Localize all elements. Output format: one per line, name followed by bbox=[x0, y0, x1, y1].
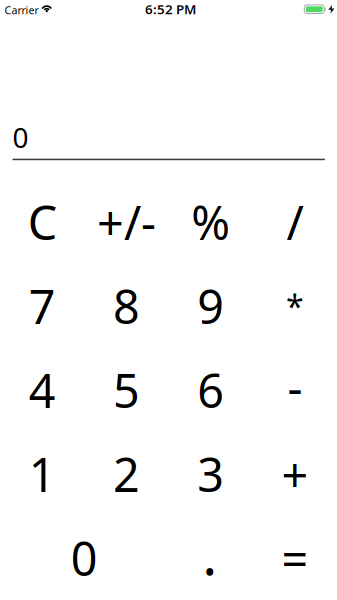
staticText: - bbox=[287, 356, 302, 418]
button[interactable]: + bbox=[253, 432, 337, 516]
staticText: 3 bbox=[197, 443, 224, 505]
staticText: Carrier bbox=[4, 3, 38, 17]
button[interactable]: 1 bbox=[0, 432, 84, 516]
button[interactable]: = bbox=[253, 516, 337, 600]
button[interactable]: 6 bbox=[168, 348, 253, 432]
staticText: + bbox=[281, 443, 308, 505]
staticText: 7 bbox=[29, 275, 56, 337]
button[interactable]: 7 bbox=[0, 264, 84, 348]
staticText: * bbox=[286, 285, 304, 327]
button[interactable]: 0 bbox=[0, 516, 168, 600]
button[interactable]: * bbox=[253, 264, 337, 348]
button[interactable]: % bbox=[168, 180, 253, 264]
button[interactable]: . bbox=[168, 516, 253, 600]
staticText: 2 bbox=[113, 443, 140, 505]
staticText: 0 bbox=[71, 527, 98, 589]
staticText: 4 bbox=[29, 359, 56, 421]
staticText: = bbox=[281, 527, 308, 589]
staticText: 0 bbox=[12, 118, 28, 156]
staticText: 5 bbox=[113, 359, 140, 421]
staticText: . bbox=[202, 516, 217, 591]
button[interactable]: / bbox=[253, 180, 337, 264]
button[interactable]: - bbox=[253, 348, 337, 432]
button[interactable]: 3 bbox=[168, 432, 253, 516]
button[interactable]: +/- bbox=[84, 180, 168, 264]
button[interactable]: 8 bbox=[84, 264, 168, 348]
staticText: 9 bbox=[197, 275, 224, 337]
staticText: 8 bbox=[113, 275, 140, 337]
button[interactable]: C bbox=[0, 180, 84, 264]
staticText: 1 bbox=[29, 443, 56, 505]
staticText: 6:52 PM bbox=[145, 0, 196, 18]
button[interactable]: 4 bbox=[0, 348, 84, 432]
button[interactable]: 2 bbox=[84, 432, 168, 516]
staticText: 6 bbox=[197, 359, 224, 421]
staticText: C bbox=[28, 191, 57, 253]
button[interactable]: 5 bbox=[84, 348, 168, 432]
button[interactable]: 9 bbox=[168, 264, 253, 348]
staticText: % bbox=[191, 191, 230, 253]
staticText: +/- bbox=[97, 191, 156, 253]
staticText: / bbox=[286, 191, 303, 253]
